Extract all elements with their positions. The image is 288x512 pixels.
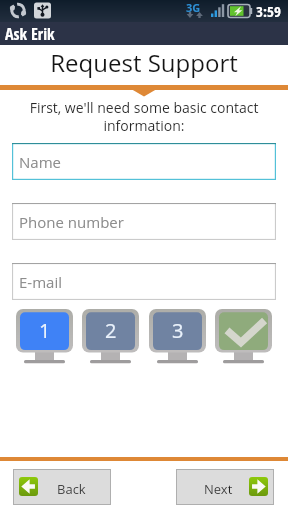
staticText: 3 <box>172 317 184 344</box>
button[interactable]: Next <box>176 469 274 505</box>
staticText: 3:59 <box>256 1 281 21</box>
staticText: Name <box>19 152 62 172</box>
staticText: 3G <box>186 0 201 15</box>
staticText: First, we'll need some basic contact inf… <box>0 98 288 135</box>
button[interactable]: Step 2 <box>82 309 139 364</box>
staticText: Request Support <box>0 46 288 79</box>
other: Back <box>19 477 38 496</box>
staticText: 1 <box>39 317 51 344</box>
other: Next <box>249 477 268 496</box>
staticText: E-mail <box>19 272 63 292</box>
staticText: Back <box>57 480 86 498</box>
button[interactable]: E-mail <box>12 263 276 300</box>
button[interactable]: Step 1 <box>16 309 73 364</box>
button[interactable]: Name <box>12 143 276 180</box>
button[interactable]: Phone number <box>12 203 276 240</box>
button[interactable]: Step 3 <box>149 309 206 364</box>
staticText: Ask Erik <box>5 23 55 45</box>
staticText: Phone number <box>19 212 124 232</box>
staticText: Next <box>204 480 233 498</box>
staticText: 2 <box>105 317 117 344</box>
button[interactable]: Step 4 complete <box>215 309 272 364</box>
button[interactable]: Back <box>13 469 111 505</box>
